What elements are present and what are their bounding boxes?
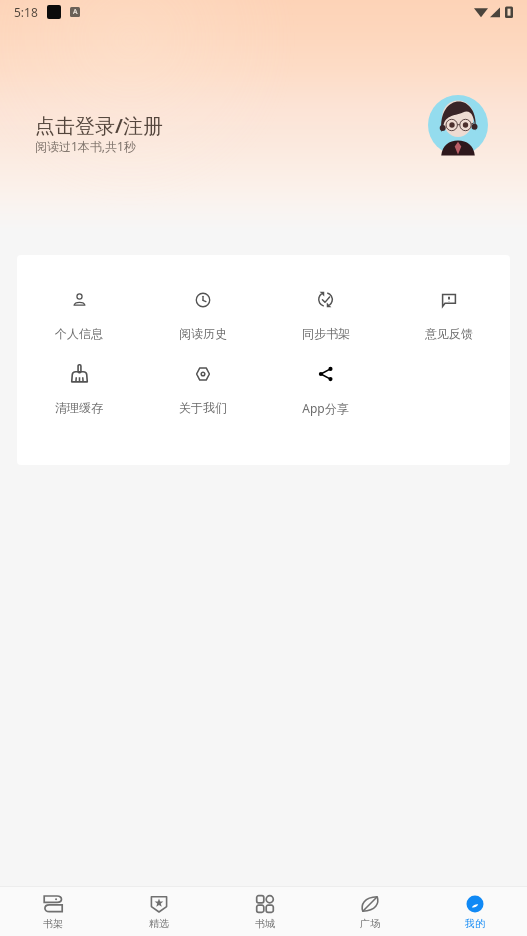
staticText: 书架 [43,917,63,930]
button[interactable]: 清理缓存 [17,364,141,415]
button[interactable]: 我的 [422,887,527,936]
staticText: 5:18 [14,4,38,20]
staticText: A [73,7,78,17]
button[interactable]: 广场 [317,887,422,936]
button[interactable]: 头像 [428,95,488,155]
button[interactable]: 同步书架 [264,290,387,341]
staticText: 书城 [255,917,275,930]
staticText: App分享 [302,400,349,416]
staticText: 精选 [149,917,169,930]
button[interactable]: 意见反馈 [387,290,510,341]
staticText: 意见反馈 [425,326,473,341]
staticText: 阅读历史 [179,326,227,341]
button[interactable]: 个人信息 [17,290,141,341]
button[interactable]: 书城 [212,887,317,936]
button[interactable]: 阅读历史 [141,290,264,341]
staticText: 阅读过1本书,共1秒 [35,138,136,154]
button[interactable]: 关于我们 [141,364,264,415]
button[interactable]: 精选 [106,887,212,936]
staticText: 关于我们 [179,400,227,415]
staticText: 广场 [360,917,380,930]
staticText: 清理缓存 [55,400,103,415]
staticText: 点击登录/注册 [35,112,163,139]
button[interactable]: App分享 [264,364,387,416]
staticText: 同步书架 [302,326,350,341]
staticText: 个人信息 [55,326,103,341]
staticText: 我的 [465,917,485,930]
button[interactable]: 书架 [0,887,106,936]
